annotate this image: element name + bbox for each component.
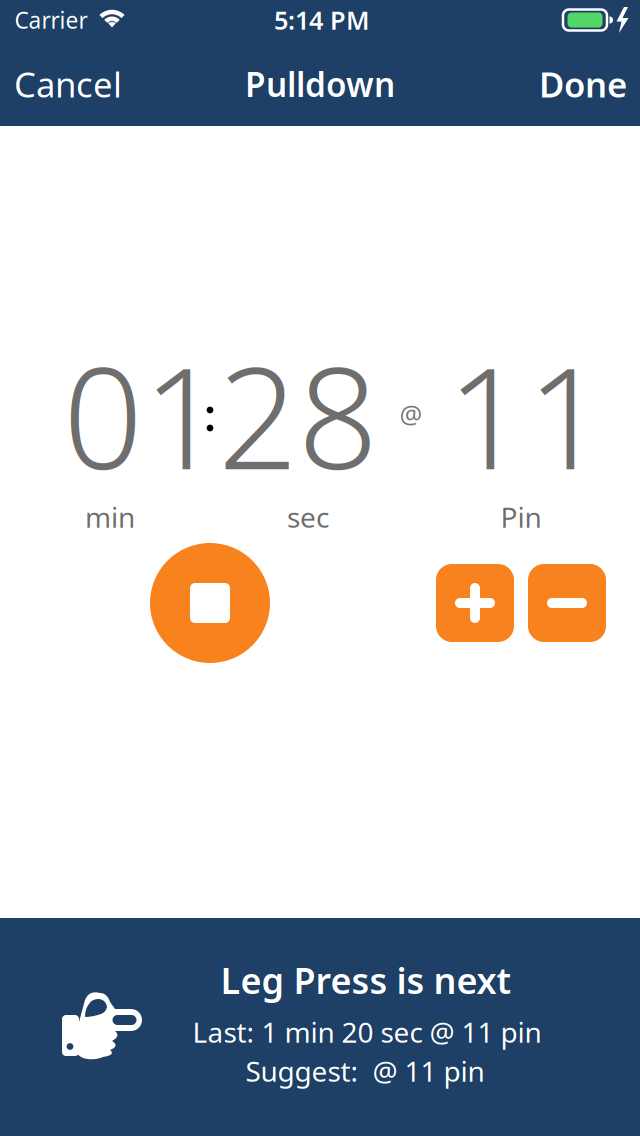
staticText: Suggest: @ 11 pin: [245, 1052, 484, 1090]
button[interactable]: Cancel: [14, 61, 122, 107]
button[interactable]: Stop: [150, 543, 270, 663]
staticText: 5:14 PM: [274, 3, 370, 37]
staticText: @: [399, 397, 422, 431]
staticText: Last: 1 min 20 sec @ 11 pin: [192, 1013, 541, 1051]
staticText: Pulldown: [245, 62, 395, 106]
staticText: min: [85, 498, 135, 536]
staticText: sec: [287, 498, 329, 536]
staticText: 11: [447, 322, 607, 508]
button[interactable]: Decrease pin: [528, 564, 606, 642]
button[interactable]: Done: [539, 61, 627, 107]
staticText: Pin: [500, 498, 541, 536]
staticText: 28: [218, 322, 378, 508]
staticText: Leg Press is next: [220, 956, 511, 1004]
staticText: 01: [63, 322, 223, 508]
staticText: Cancel: [14, 61, 122, 107]
staticText: Done: [539, 61, 627, 107]
button[interactable]: Increase pin: [436, 564, 514, 642]
staticText: Carrier: [14, 5, 87, 35]
